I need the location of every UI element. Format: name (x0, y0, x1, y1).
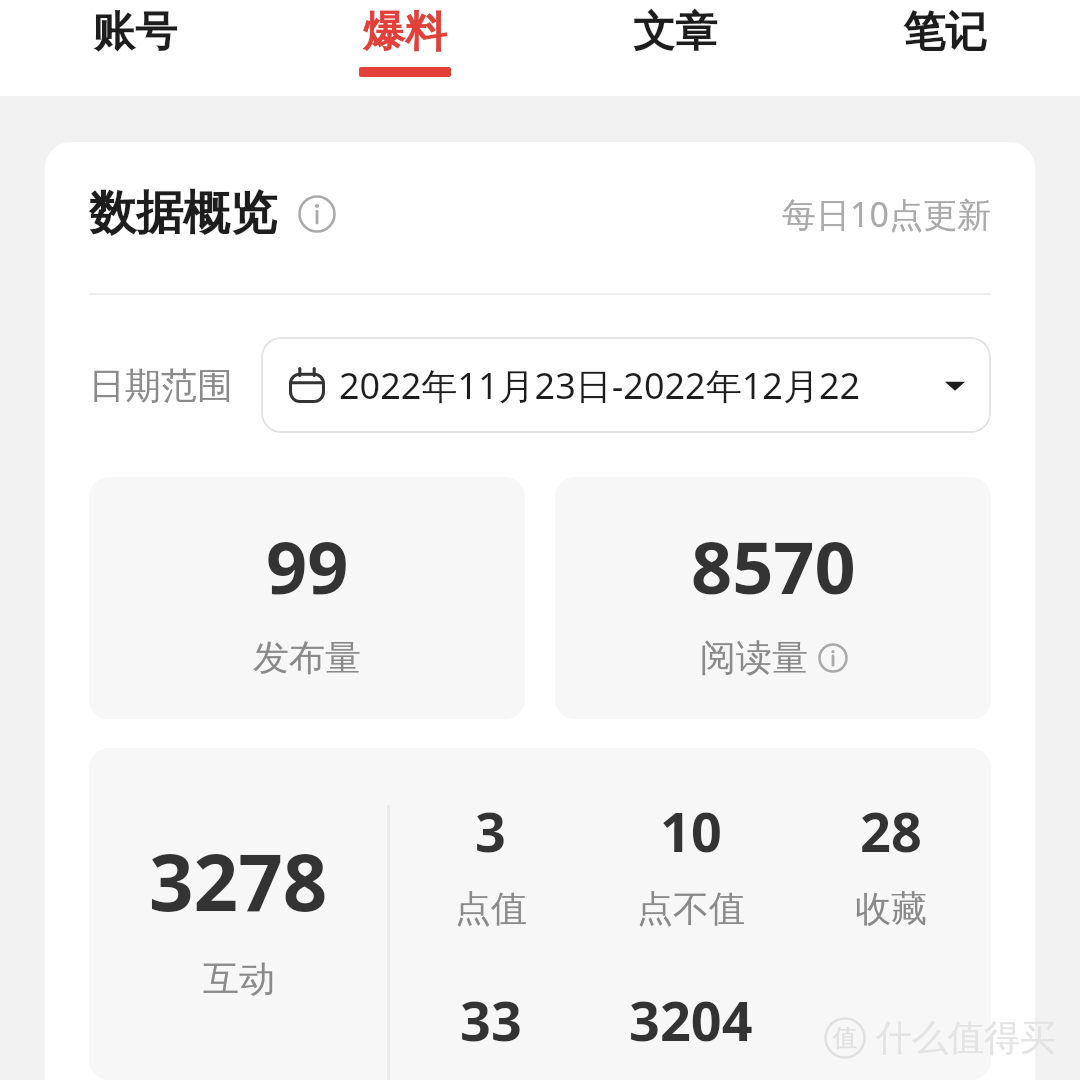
staticText: 什么值得买 (876, 1015, 1056, 1060)
staticText: 发布量 (253, 635, 361, 680)
button[interactable]: 文章 (540, 0, 810, 96)
button[interactable]: 爆料 (270, 0, 540, 96)
staticText: 99 (266, 517, 349, 615)
staticText: 数据概览 (89, 184, 277, 243)
staticText: 点不值 (637, 886, 745, 931)
staticText: 值 (833, 1023, 857, 1053)
staticText: 28 (860, 794, 922, 868)
button[interactable]: 99 (89, 477, 525, 719)
staticText: 阅读量 (700, 635, 808, 680)
button[interactable]: 数据说明 (295, 192, 339, 236)
staticText: 爆料 (363, 6, 447, 59)
staticText: 收藏 (855, 886, 927, 931)
staticText: 账号 (93, 6, 177, 59)
button[interactable]: 8570 (555, 477, 991, 719)
button[interactable]: 3278 (89, 748, 991, 1080)
button[interactable]: 2022年11月23日-2022年12月22 (261, 337, 991, 433)
button[interactable]: 笔记 (810, 0, 1080, 96)
staticText: 笔记 (903, 6, 987, 59)
staticText: 每日10点更新 (782, 191, 991, 237)
staticText: 点值 (455, 886, 527, 931)
staticText: 33 (460, 983, 522, 1057)
staticText: 2022年11月23日-2022年12月22 (339, 361, 935, 410)
staticText: 互动 (203, 956, 275, 1001)
staticText: 3278 (149, 828, 328, 934)
staticText: 文章 (633, 6, 717, 59)
button[interactable]: 账号 (0, 0, 270, 96)
staticText: 3 (475, 794, 506, 868)
staticText: 10 (660, 794, 722, 868)
staticText: 8570 (691, 517, 856, 615)
staticText: 3204 (629, 983, 753, 1057)
staticText: 日期范围 (89, 363, 233, 408)
